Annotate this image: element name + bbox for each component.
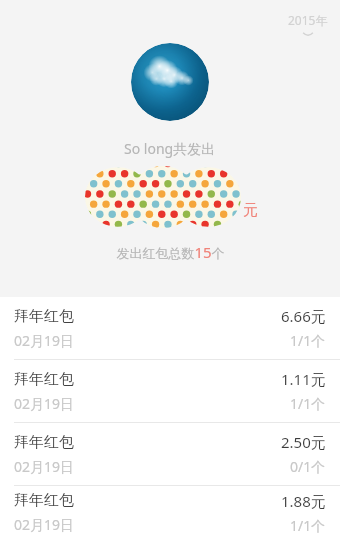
button[interactable]: 2015年 xyxy=(288,12,328,38)
staticText: 02月19日 xyxy=(14,457,75,476)
staticText: 发出红包总数15个 xyxy=(116,242,225,262)
staticText: 1.88元 xyxy=(281,491,326,511)
staticText: 6.66元 xyxy=(281,306,326,326)
staticText: 元 xyxy=(243,201,258,220)
staticText: 0/1个 xyxy=(290,457,326,476)
staticText: 2.50元 xyxy=(281,432,326,452)
button[interactable]: 拜年红包 xyxy=(0,360,340,422)
staticText: 1/1个 xyxy=(290,331,326,350)
staticText: So long共发出 xyxy=(124,139,216,158)
staticText: 02月19日 xyxy=(14,394,75,413)
staticText: 1.11元 xyxy=(281,369,326,389)
staticText: 2015年 xyxy=(288,12,328,28)
button[interactable]: 拜年红包 xyxy=(0,486,340,539)
staticText: 1/1个 xyxy=(290,394,326,413)
staticText: 拜年红包 xyxy=(14,491,74,510)
staticText: 02月19日 xyxy=(14,515,75,534)
staticText: 拜年红包 xyxy=(14,433,74,452)
button[interactable]: 拜年红包 xyxy=(0,423,340,485)
staticText: 1/1个 xyxy=(290,516,326,535)
button[interactable]: Profile avatar xyxy=(131,43,209,121)
staticText: 02月19日 xyxy=(14,331,75,350)
button[interactable]: 拜年红包 xyxy=(0,297,340,359)
staticText: 拜年红包 xyxy=(14,307,74,326)
staticText: 拜年红包 xyxy=(14,370,74,389)
